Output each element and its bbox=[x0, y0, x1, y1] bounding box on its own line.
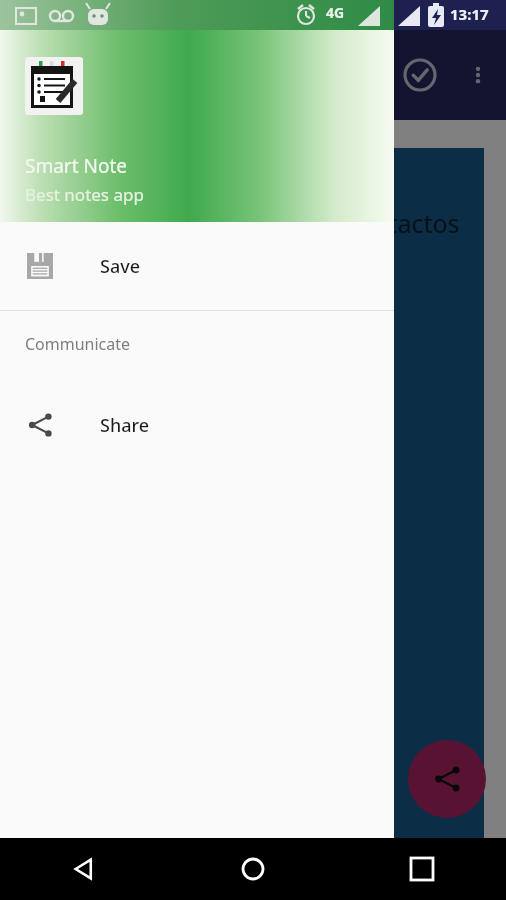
staticText: Best notes app bbox=[25, 183, 144, 206]
button[interactable]: Done bbox=[396, 51, 444, 99]
staticText: 4G bbox=[326, 3, 345, 22]
staticText: Communicate bbox=[25, 333, 131, 355]
staticText: Contactos bbox=[342, 206, 460, 240]
button[interactable]: Share bbox=[408, 740, 486, 818]
staticText: 13:17 bbox=[450, 4, 489, 24]
staticText: Smart Note bbox=[25, 153, 128, 179]
button[interactable]: Home bbox=[168, 838, 337, 900]
button[interactable]: Share bbox=[0, 381, 394, 469]
staticText: Save bbox=[100, 254, 141, 279]
button[interactable]: Save bbox=[0, 222, 394, 310]
button[interactable]: More options bbox=[456, 53, 500, 97]
button[interactable]: Recent apps bbox=[337, 838, 506, 900]
staticText: Share bbox=[100, 413, 150, 438]
button[interactable]: Back bbox=[0, 838, 168, 900]
